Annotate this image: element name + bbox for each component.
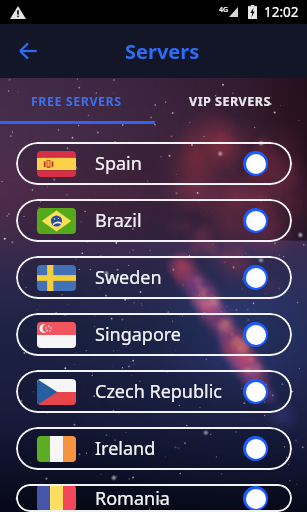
button[interactable]: Back xyxy=(13,36,43,66)
button[interactable]: Ireland xyxy=(16,427,292,470)
button[interactable]: Brazil xyxy=(16,199,292,242)
staticText: Romania xyxy=(95,486,170,511)
staticText: Brazil xyxy=(95,208,142,233)
staticText: Sweden xyxy=(95,265,162,290)
button[interactable]: Spain xyxy=(16,142,292,185)
button[interactable]: Czech Republic xyxy=(16,370,292,413)
staticText: 4G xyxy=(219,5,229,15)
button[interactable]: FREE SERVERS xyxy=(0,78,153,124)
button[interactable]: Singapore xyxy=(16,313,292,356)
button[interactable]: Sweden xyxy=(16,256,292,299)
staticText: Czech Republic xyxy=(95,379,222,404)
staticText: VIP SERVERS xyxy=(189,93,271,110)
staticText: Servers xyxy=(125,38,200,65)
staticText: FREE SERVERS xyxy=(31,93,122,110)
button[interactable]: Romania xyxy=(16,484,292,512)
staticText: Spain xyxy=(95,151,142,176)
staticText: Singapore xyxy=(95,322,182,347)
staticText: 12:02 xyxy=(264,3,299,21)
staticText: Ireland xyxy=(95,436,156,461)
button[interactable]: VIP SERVERS xyxy=(153,78,307,124)
